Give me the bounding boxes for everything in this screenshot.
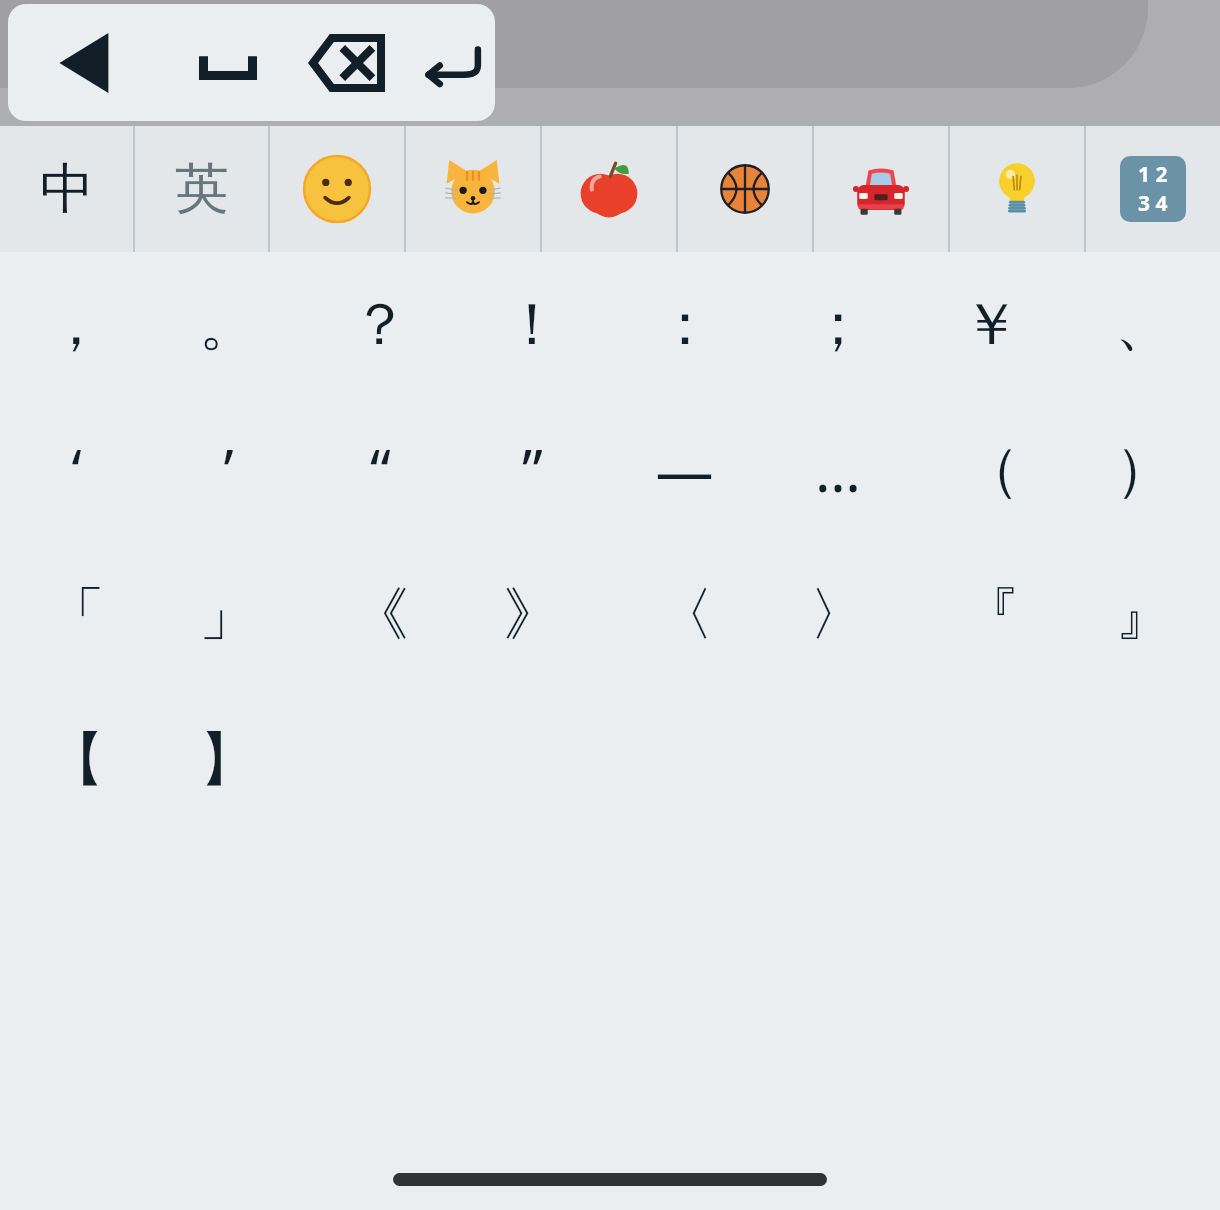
button[interactable]: Activities — [678, 126, 812, 252]
button[interactable]: ！ — [456, 252, 608, 397]
button[interactable]: 」 — [152, 542, 304, 687]
staticText: ” — [522, 430, 543, 509]
button[interactable]: ￥ — [914, 252, 1067, 397]
staticText: 『 — [962, 578, 1020, 651]
staticText: ！ — [503, 288, 561, 361]
staticText: ； — [809, 288, 867, 361]
button[interactable]: “ — [304, 397, 456, 542]
button[interactable]: 〈 — [608, 542, 761, 687]
staticText: ‘ — [71, 430, 82, 509]
staticText: 英 — [175, 155, 229, 223]
staticText: ？ — [351, 288, 409, 361]
button[interactable]: ， — [0, 252, 152, 397]
button[interactable]: 《 — [304, 542, 456, 687]
staticText: 〈 — [656, 578, 714, 651]
button[interactable]: 。 — [152, 252, 304, 397]
button[interactable]: … — [761, 397, 914, 542]
button[interactable]: 』 — [1067, 542, 1220, 687]
button[interactable]: Symbols — [1086, 126, 1220, 252]
button[interactable]: Animals — [406, 126, 540, 252]
button[interactable]: — — [608, 397, 761, 542]
button[interactable]: ’ — [152, 397, 304, 542]
button[interactable]: ： — [608, 252, 761, 397]
button[interactable]: Enter — [406, 4, 495, 121]
button[interactable]: ； — [761, 252, 914, 397]
staticText: 】 — [199, 723, 257, 796]
staticText: 、 — [1115, 288, 1173, 361]
button[interactable]: 『 — [914, 542, 1067, 687]
staticText: 3 4 — [1138, 189, 1168, 218]
button[interactable]: Backspace — [288, 4, 406, 121]
staticText: 《 — [351, 578, 409, 651]
button[interactable]: 英 — [135, 126, 268, 252]
button[interactable]: Food — [542, 126, 676, 252]
button[interactable]: Move cursor left — [8, 4, 168, 121]
staticText: （ — [962, 433, 1020, 506]
button[interactable]: 】 — [152, 687, 304, 832]
staticText: ￥ — [962, 288, 1020, 361]
staticText: 【 — [47, 723, 105, 796]
button[interactable]: ） — [1067, 397, 1220, 542]
staticText: 「 — [47, 578, 105, 651]
button[interactable]: 》 — [456, 542, 608, 687]
staticText: ’ — [223, 430, 234, 509]
button[interactable]: Space — [168, 4, 288, 121]
staticText: … — [815, 430, 861, 509]
staticText: 》 — [503, 578, 561, 651]
staticText: “ — [370, 430, 391, 509]
staticText: 〉 — [809, 578, 867, 651]
staticText: ） — [1115, 433, 1173, 506]
staticText: ， — [47, 288, 105, 361]
button[interactable]: 中 — [0, 126, 133, 252]
button[interactable]: 「 — [0, 542, 152, 687]
button[interactable]: ？ — [304, 252, 456, 397]
staticText: 中 — [40, 155, 94, 223]
button[interactable]: 〉 — [761, 542, 914, 687]
button[interactable]: 、 — [1067, 252, 1220, 397]
button[interactable]: 【 — [0, 687, 152, 832]
staticText: 1 2 — [1138, 160, 1168, 189]
staticText: 』 — [1115, 578, 1173, 651]
staticText: ： — [656, 288, 714, 361]
button[interactable]: ” — [456, 397, 608, 542]
staticText: — — [655, 430, 714, 509]
button[interactable]: （ — [914, 397, 1067, 542]
staticText: 」 — [199, 578, 257, 651]
button[interactable]: ‘ — [0, 397, 152, 542]
staticText: 。 — [199, 288, 257, 361]
button[interactable]: Travel — [814, 126, 948, 252]
button[interactable]: Objects — [950, 126, 1084, 252]
button[interactable]: Smileys — [270, 126, 404, 252]
